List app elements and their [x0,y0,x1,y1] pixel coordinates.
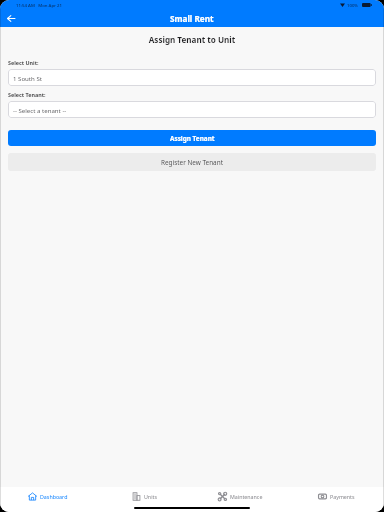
staticText: Assign Tenant to Unit [0,34,384,45]
staticText: Dashboard [40,493,68,500]
staticText: Small Rent [170,13,214,24]
staticText: Maintenance [230,493,263,500]
staticText: Payments [330,493,355,500]
button[interactable]: Register New Tenant [8,153,376,171]
staticText: Assign Tenant [170,134,215,143]
button[interactable]: Units tab [96,492,192,501]
staticText: 11:54 AM Mon Apr 21 [16,2,62,8]
staticText: -- Select a tenant -- [13,106,67,114]
button[interactable]: Maintenance tab [192,492,288,501]
button[interactable]: Back [0,10,22,27]
button[interactable]: Dashboard tab [0,492,96,501]
button[interactable]: 1 South St [8,69,376,86]
staticText: 100% [347,2,359,8]
staticText: Register New Tenant [161,158,223,167]
button[interactable]: Payments tab [288,492,384,501]
button[interactable]: Assign Tenant [8,130,376,146]
staticText: Units [144,493,157,500]
staticText: Select Unit: [8,59,39,66]
staticText: 1 South St [13,74,42,82]
button[interactable]: -- Select a tenant -- [8,101,376,118]
staticText: Select Tenant: [8,91,46,98]
